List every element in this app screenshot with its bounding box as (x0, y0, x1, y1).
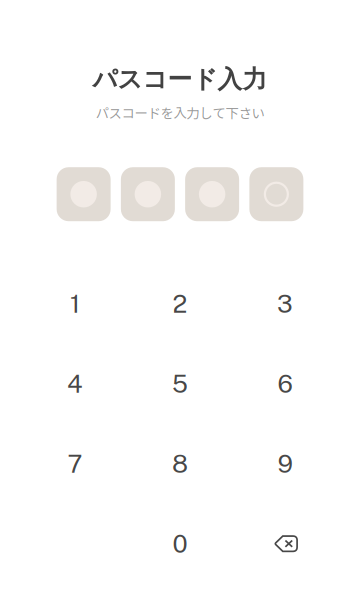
staticText: 2 (172, 289, 187, 318)
staticText: 0 (172, 529, 187, 558)
button[interactable]: 4 (22, 344, 127, 424)
button[interactable]: 8 (127, 424, 232, 504)
button[interactable]: 5 (127, 344, 232, 424)
button[interactable]: 2 (127, 264, 232, 344)
staticText: 5 (172, 369, 188, 398)
staticText: 4 (67, 369, 83, 398)
button[interactable]: 9 (232, 424, 337, 504)
button[interactable]: 3 (232, 264, 337, 344)
button[interactable]: Delete (232, 504, 337, 584)
button[interactable]: 1 (22, 264, 127, 344)
staticText: 6 (277, 369, 292, 398)
staticText: パスコード入力 (92, 64, 267, 95)
staticText: 8 (172, 449, 188, 478)
staticText: 7 (67, 449, 82, 478)
staticText: 9 (277, 449, 292, 478)
staticText: 1 (70, 289, 80, 318)
staticText: パスコードを入力して下さい (95, 103, 264, 122)
button[interactable]: 0 (127, 504, 232, 584)
staticText: 3 (277, 289, 293, 318)
button[interactable]: 7 (22, 424, 127, 504)
button[interactable]: 6 (232, 344, 337, 424)
